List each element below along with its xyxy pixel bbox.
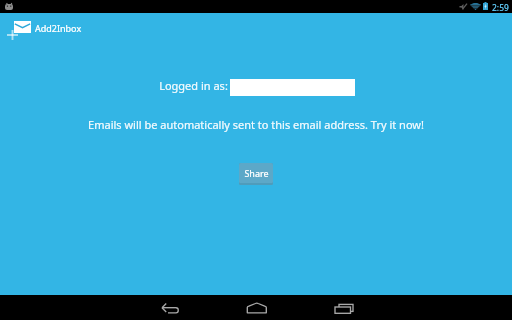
staticText: Emails will be automatically sent to thi…: [88, 117, 424, 132]
button[interactable]: Share: [239, 163, 273, 185]
button[interactable]: Add2Inbox: [0, 13, 92, 46]
staticText: Logged in as:: [159, 78, 228, 93]
button[interactable]: Home: [239, 296, 275, 320]
staticText: 2:59: [492, 2, 509, 14]
button[interactable]: Recent apps: [327, 296, 363, 320]
button[interactable]: Back: [153, 296, 189, 320]
staticText: Add2Inbox: [35, 22, 82, 34]
staticText: Share: [244, 167, 269, 179]
